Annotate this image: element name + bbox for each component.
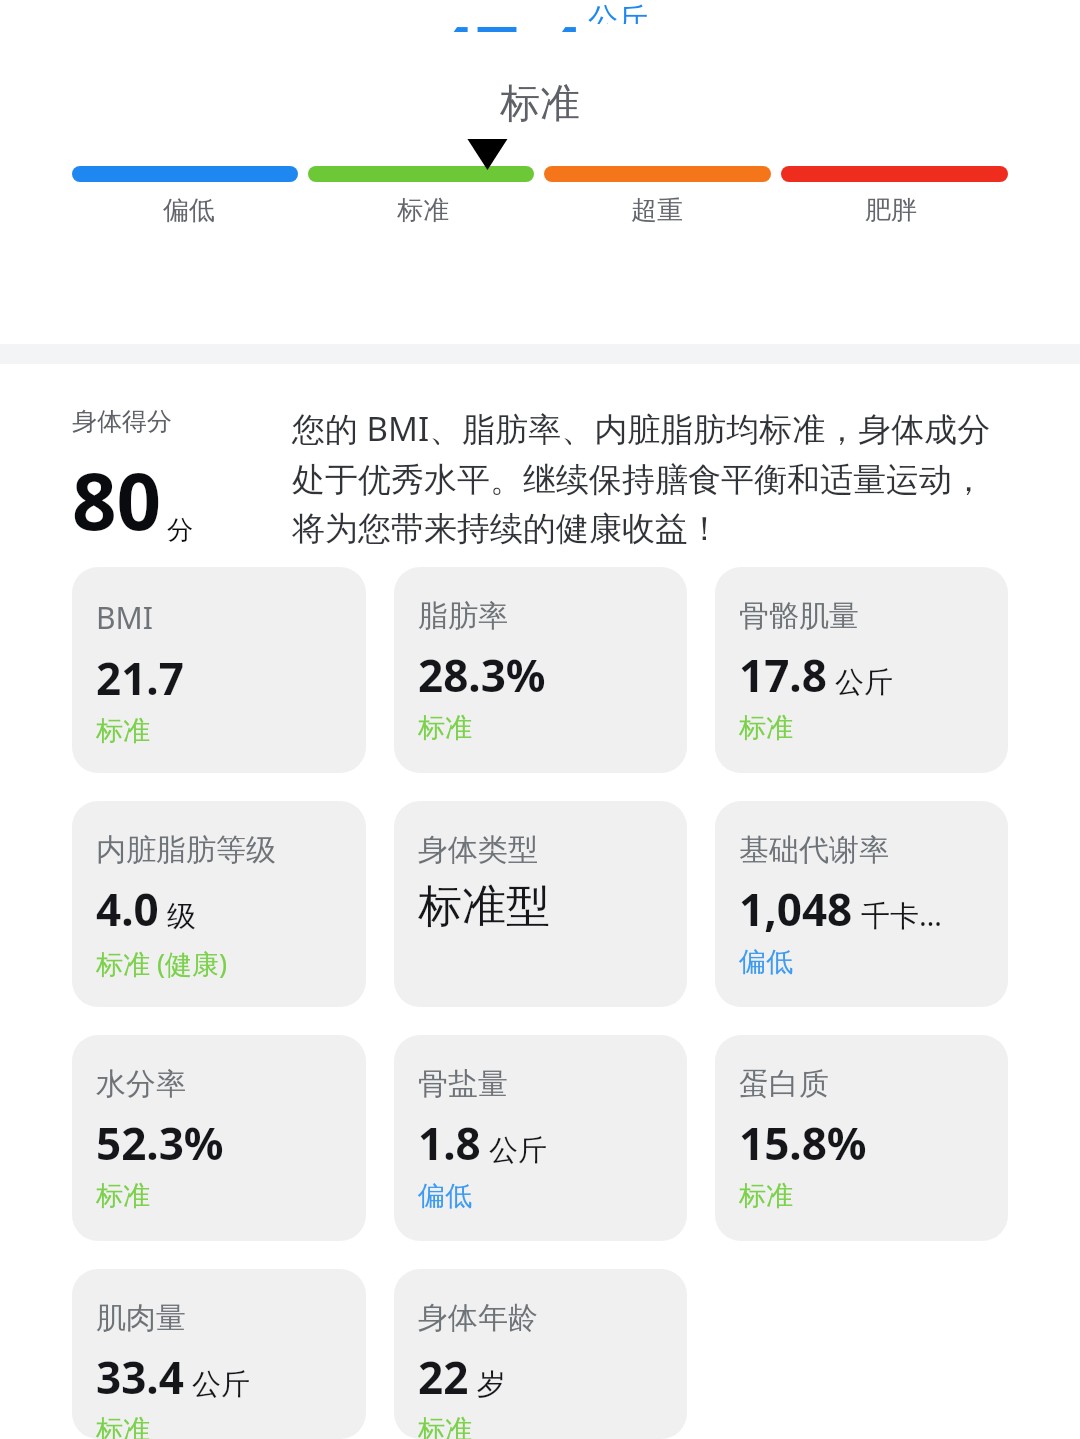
staticText: 您的 BMI、脂肪率、内脏脂肪均标准，身体成分处于优秀水平。继续保持膳食平衡和适… <box>292 406 1002 549</box>
staticText: 岁 <box>477 1366 506 1403</box>
staticText: 15.8% <box>739 1113 867 1173</box>
staticText: 身体得分 <box>72 406 172 437</box>
staticText: 蛋白质 <box>739 1065 829 1103</box>
button[interactable]: 身体类型 <box>394 801 687 1007</box>
staticText: 标准 <box>739 1179 793 1213</box>
staticText: 1,048 <box>739 879 853 939</box>
staticText: 水分率 <box>96 1065 186 1103</box>
button[interactable]: 肌肉量 <box>72 1269 366 1439</box>
staticText: 47.4 <box>432 0 584 32</box>
button[interactable]: 骨骼肌量 <box>715 567 1008 773</box>
staticText: 28.3% <box>418 645 546 705</box>
staticText: 22 <box>418 1347 469 1407</box>
staticText: 公斤 <box>835 664 893 701</box>
staticText: 分 <box>167 514 193 547</box>
staticText: 肥胖 <box>865 194 917 227</box>
staticText: 标准 <box>418 711 472 745</box>
staticText: 标准 <box>739 711 793 745</box>
staticText: 标准 <box>96 1179 150 1213</box>
staticText: 内脏脂肪等级 <box>96 831 276 869</box>
staticText: 公斤 <box>192 1366 250 1403</box>
staticText: BMI <box>96 597 153 638</box>
staticText: 偏低 <box>418 1179 472 1213</box>
staticText: 标准 <box>96 714 150 748</box>
staticText: 偏低 <box>163 194 215 227</box>
staticText: 标准 <box>96 1413 150 1439</box>
button[interactable]: 蛋白质 <box>715 1035 1008 1241</box>
button[interactable]: 内脏脂肪等级 <box>72 801 366 1007</box>
button[interactable]: 脂肪率 <box>394 567 687 773</box>
staticText: 标准 <box>397 194 449 227</box>
button[interactable]: 身体年龄 <box>394 1269 687 1439</box>
staticText: 标准型 <box>418 879 550 934</box>
staticText: 52.3% <box>96 1113 224 1173</box>
staticText: 骨骼肌量 <box>739 597 859 635</box>
staticText: 17.8 <box>739 645 827 705</box>
button[interactable]: 水分率 <box>72 1035 366 1241</box>
staticText: 千卡… <box>861 895 942 935</box>
staticText: 1.8 <box>418 1113 481 1173</box>
staticText: 肌肉量 <box>96 1299 186 1337</box>
staticText: 超重 <box>631 194 683 227</box>
button[interactable]: BMI <box>72 567 366 773</box>
staticText: 4.0 <box>96 879 159 939</box>
staticText: 骨盐量 <box>418 1065 508 1103</box>
staticText: 身体类型 <box>418 831 538 869</box>
staticText: 身体年龄 <box>418 1299 538 1337</box>
staticText: 标准 (健康) <box>96 945 228 982</box>
button[interactable]: 骨盐量 <box>394 1035 687 1241</box>
staticText: 21.7 <box>96 648 184 708</box>
staticText: 公斤 <box>588 0 648 24</box>
staticText: 33.4 <box>96 1347 184 1407</box>
staticText: 80 <box>72 447 162 553</box>
staticText: 脂肪率 <box>418 597 508 635</box>
staticText: 标准 <box>0 78 1080 128</box>
staticText: 公斤 <box>489 1132 547 1169</box>
staticText: 基础代谢率 <box>739 831 889 869</box>
staticText: 标准 <box>418 1413 472 1439</box>
staticText: 级 <box>167 898 196 935</box>
button[interactable]: 基础代谢率 <box>715 801 1008 1007</box>
staticText: 偏低 <box>739 945 793 979</box>
